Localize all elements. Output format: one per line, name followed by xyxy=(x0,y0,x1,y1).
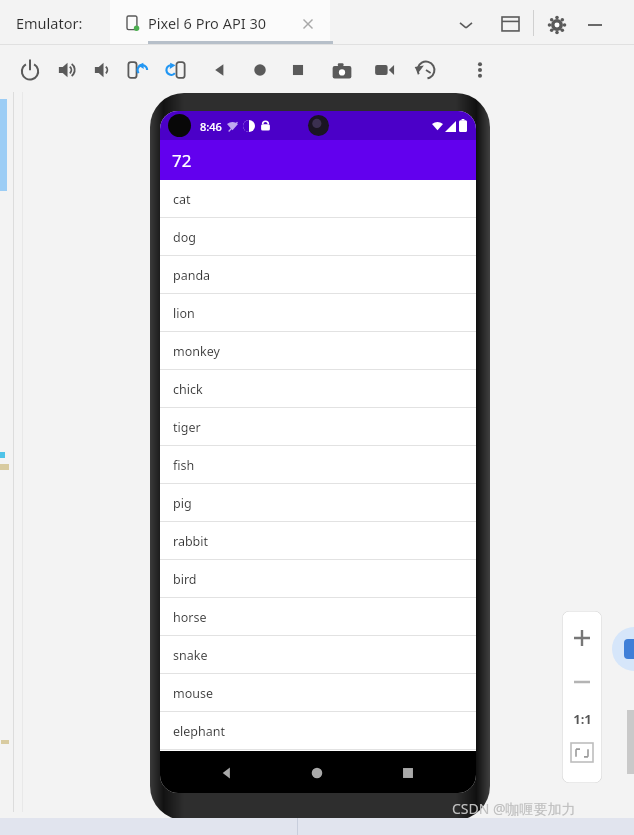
button[interactable]: Actual size xyxy=(567,709,597,729)
button[interactable]: Rotate right xyxy=(164,58,188,82)
button[interactable]: Fit to window xyxy=(570,741,594,765)
button[interactable]: bird xyxy=(160,560,476,598)
button[interactable]: Power xyxy=(18,58,42,82)
button[interactable]: monkey xyxy=(160,332,476,370)
button[interactable]: Dock window xyxy=(502,17,519,34)
staticText: tiger xyxy=(173,419,201,436)
button[interactable]: mouse xyxy=(160,674,476,712)
staticText: horse xyxy=(173,609,207,626)
button[interactable]: panda xyxy=(160,256,476,294)
button[interactable]: Recent apps xyxy=(400,765,416,781)
button[interactable]: Overview xyxy=(286,58,310,82)
staticText: 1:1 xyxy=(573,710,592,728)
button[interactable]: More xyxy=(468,58,492,82)
staticText: panda xyxy=(173,267,211,284)
staticText: rabbit xyxy=(173,533,209,550)
staticText: Emulator: xyxy=(16,13,83,33)
button[interactable]: History xyxy=(414,58,438,82)
staticText: bird xyxy=(173,571,197,588)
button[interactable]: Assistant bubble xyxy=(612,627,634,671)
staticText: dog xyxy=(173,229,196,246)
staticText: elephant xyxy=(173,723,225,740)
button[interactable]: fish xyxy=(160,446,476,484)
button[interactable]: Back xyxy=(218,764,236,782)
button[interactable]: Close tab xyxy=(300,16,316,32)
button[interactable]: horse xyxy=(160,598,476,636)
button[interactable]: pig xyxy=(160,484,476,522)
button[interactable]: Take screenshot xyxy=(330,58,354,82)
staticText: chick xyxy=(173,381,203,398)
button[interactable]: lion xyxy=(160,294,476,332)
staticText: CSDN @咖喱要加力 xyxy=(452,799,576,818)
button[interactable]: More tabs xyxy=(457,16,475,34)
button[interactable]: Settings xyxy=(548,16,566,34)
staticText: 8:46 xyxy=(200,119,222,134)
button[interactable]: Rotate left xyxy=(126,58,150,82)
staticText: Pixel 6 Pro API 30 xyxy=(148,13,266,33)
staticText: pig xyxy=(173,495,192,512)
button[interactable]: rabbit xyxy=(160,522,476,560)
button[interactable]: tiger xyxy=(160,408,476,446)
button[interactable]: Home xyxy=(309,765,325,781)
button[interactable]: cat xyxy=(160,180,476,218)
staticText: mouse xyxy=(173,685,214,702)
button[interactable]: Record screen xyxy=(372,58,396,82)
button[interactable]: Zoom in xyxy=(567,623,597,653)
staticText: monkey xyxy=(173,343,220,360)
button[interactable]: Zoom out xyxy=(567,667,597,697)
button[interactable]: snake xyxy=(160,636,476,674)
button[interactable]: elephant xyxy=(160,712,476,750)
button[interactable]: chick xyxy=(160,370,476,408)
button[interactable]: Volume down xyxy=(92,58,116,82)
staticText: snake xyxy=(173,647,208,664)
button[interactable] xyxy=(110,0,330,45)
staticText: cat xyxy=(173,191,191,208)
button[interactable]: Volume up xyxy=(56,58,80,82)
staticText: 72 xyxy=(172,149,192,172)
button[interactable]: Minimize xyxy=(586,16,604,34)
button[interactable]: dog xyxy=(160,218,476,256)
staticText: fish xyxy=(173,457,195,474)
staticText: lion xyxy=(173,305,195,322)
button[interactable]: Home xyxy=(248,58,272,82)
button[interactable]: Back xyxy=(208,58,232,82)
